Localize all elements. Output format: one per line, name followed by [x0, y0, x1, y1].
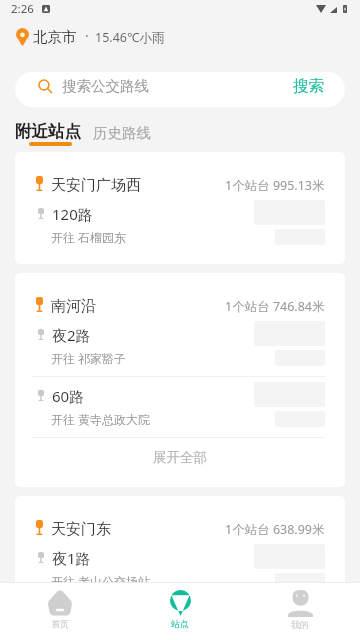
staticText: 我的 — [291, 619, 309, 630]
staticText: 历史路线 — [93, 124, 151, 142]
staticText: · — [85, 26, 89, 45]
staticText: 搜索 — [293, 76, 324, 96]
staticText: 夜1路 — [52, 548, 91, 568]
staticText: 15.46℃小雨 — [95, 29, 165, 46]
staticText: 1个站台 746.84米 — [225, 298, 325, 315]
staticText: 站点 — [171, 618, 189, 629]
staticText: 开往 老山公交场站 — [51, 573, 151, 589]
staticText: 北京市 — [33, 28, 77, 46]
button[interactable]: Home — [0, 583, 120, 629]
staticText: 搜索公交路线 — [62, 77, 149, 95]
staticText: 展开全部 — [153, 449, 207, 466]
button[interactable]: 搜索 — [269, 72, 345, 102]
button[interactable]: 展开全部 — [15, 438, 345, 487]
staticText: 开往 祁家豁子 — [51, 350, 127, 366]
button[interactable]: 天安门广场西 — [15, 152, 345, 264]
button[interactable]: 南河沿 — [15, 273, 345, 487]
staticText: 首页 — [51, 618, 69, 629]
button[interactable]: 附近站点 — [15, 121, 81, 146]
staticText: 60路 — [52, 386, 85, 406]
button[interactable]: Stations — [120, 583, 240, 629]
staticText: 120路 — [52, 204, 93, 224]
button[interactable]: 60路 — [15, 377, 345, 437]
staticText: 1个站台 995.13米 — [225, 177, 325, 194]
staticText: 开往 石榴园东 — [51, 229, 127, 245]
staticText: 天安门广场西 — [51, 176, 141, 195]
staticText: 天安门东 — [51, 520, 111, 539]
button[interactable]: 搜索公交路线 — [15, 72, 345, 107]
staticText: 夜2路 — [52, 325, 91, 345]
staticText: 南河沿 — [51, 297, 96, 316]
button[interactable]: 120路 — [15, 195, 345, 255]
staticText: 1个站台 638.99米 — [225, 521, 325, 538]
button[interactable]: 夜1路 — [15, 539, 345, 599]
button[interactable]: 夜2路 — [15, 316, 345, 376]
button[interactable]: 北京市 — [16, 24, 360, 50]
staticText: 开往 黄寺总政大院 — [51, 411, 151, 427]
staticText: 附近站点 — [15, 121, 81, 142]
staticText: 2:26 — [11, 1, 34, 17]
button[interactable]: 历史路线 — [93, 124, 151, 146]
button[interactable]: 天安门东 — [15, 496, 345, 608]
button[interactable]: Profile — [240, 583, 360, 630]
